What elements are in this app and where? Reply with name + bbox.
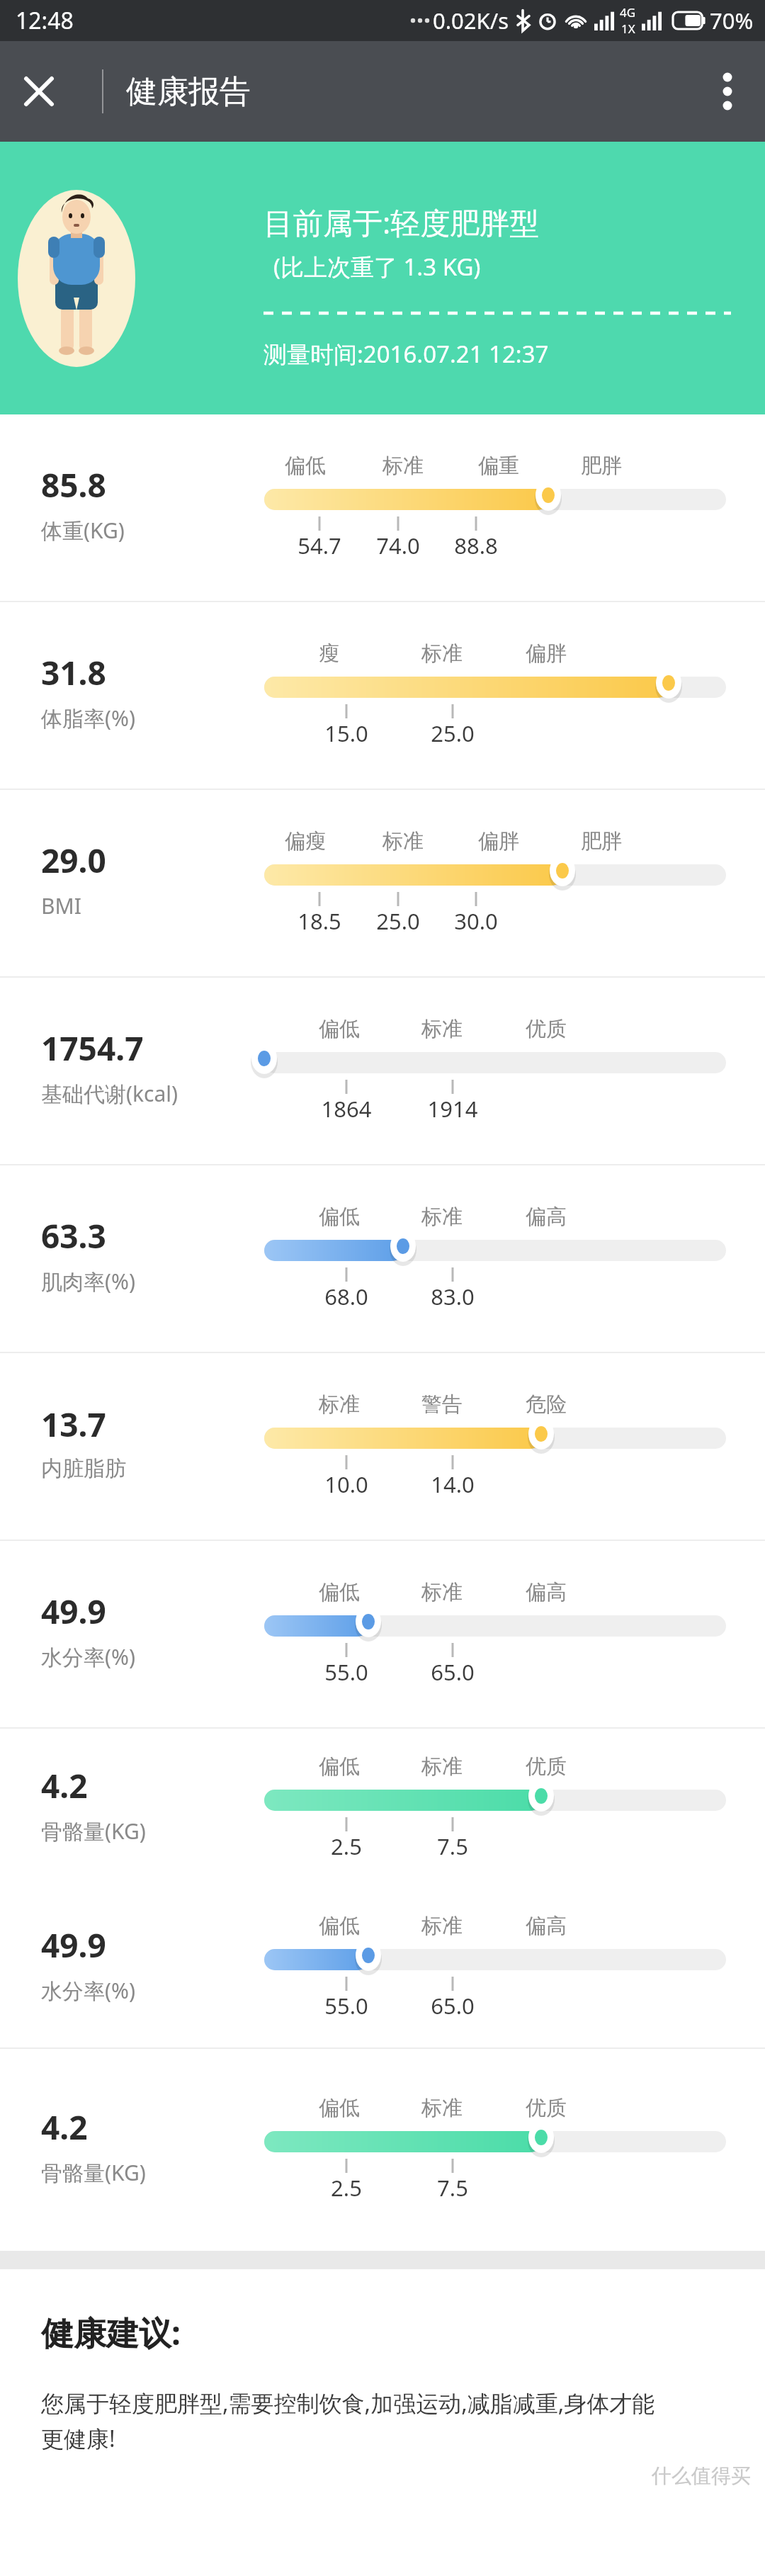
staticText: 标准 [382, 453, 424, 479]
staticText: 标准 [319, 1391, 360, 1418]
button[interactable]: More options [696, 60, 759, 123]
staticText: 54.7 [277, 531, 362, 560]
staticText: 74.0 [356, 531, 441, 560]
staticText: 体重(KG) [41, 516, 125, 545]
staticText: 目前属于:轻度肥胖型 [263, 202, 540, 242]
staticText: 标准 [421, 640, 463, 667]
staticText: 水分率(%) [41, 1976, 135, 2005]
staticText: 10.0 [304, 1469, 389, 1499]
staticText: 0.02K/s [433, 6, 509, 35]
staticText: 偏重 [478, 453, 519, 479]
staticText: 什么值得买 [652, 2463, 751, 2488]
staticText: 优质 [526, 2095, 567, 2121]
staticText: 15.0 [304, 718, 389, 748]
staticText: 健康建议: [41, 2310, 181, 2355]
staticText: 标准 [421, 1204, 463, 1230]
staticText: 偏高 [526, 1579, 567, 1605]
staticText: 29.0 [41, 838, 106, 883]
staticText: 25.0 [356, 906, 441, 936]
staticText: 65.0 [410, 1991, 495, 2021]
staticText: 18.5 [277, 906, 362, 936]
staticText: 1X [621, 21, 635, 37]
staticText: 肥胖 [581, 453, 622, 479]
button[interactable]: 29.0 [0, 790, 765, 976]
staticText: 偏低 [319, 2095, 360, 2121]
staticText: 优质 [526, 1016, 567, 1042]
staticText: 偏高 [526, 1913, 567, 1939]
staticText: 1914 [410, 1094, 495, 1124]
staticText: 70% [710, 6, 754, 35]
button[interactable]: 4.2 [0, 2049, 765, 2251]
staticText: 63.3 [41, 1214, 106, 1258]
staticText: 68.0 [304, 1282, 389, 1311]
staticText: 偏胖 [478, 828, 519, 854]
staticText: 4.2 [41, 1763, 88, 1808]
button[interactable]: 4.2 [0, 1729, 765, 1888]
staticText: (比上次重了 1.3 KG) [273, 251, 481, 283]
staticText: 健康报告 [126, 72, 251, 111]
staticText: 55.0 [304, 1991, 389, 2021]
staticText: 2.5 [304, 2173, 389, 2203]
staticText: 优质 [526, 1753, 567, 1780]
button[interactable]: 49.9 [0, 1541, 765, 1727]
staticText: 偏瘦 [285, 828, 326, 854]
staticText: 基础代谢(kcal) [41, 1079, 178, 1108]
staticText: 肌肉率(%) [41, 1267, 135, 1296]
staticText: 水分率(%) [41, 1642, 135, 1671]
staticText: 测量时间:2016.07.21 12:37 [263, 338, 549, 370]
staticText: 55.0 [304, 1657, 389, 1687]
staticText: 4.2 [41, 2105, 88, 2150]
staticText: 警告 [421, 1391, 463, 1418]
button[interactable]: 49.9 [0, 1888, 765, 2047]
staticText: 12:48 [16, 5, 74, 36]
staticText: 65.0 [410, 1657, 495, 1687]
staticText: 31.8 [41, 650, 106, 695]
staticText: 体脂率(%) [41, 704, 135, 733]
staticText: 标准 [421, 1579, 463, 1605]
staticText: 偏低 [319, 1204, 360, 1230]
staticText: 骨骼量(KG) [41, 2158, 146, 2187]
staticText: 肥胖 [581, 828, 622, 854]
staticText: 7.5 [410, 1831, 495, 1861]
staticText: 偏低 [319, 1913, 360, 1939]
staticText: 瘦 [319, 640, 339, 667]
staticText: 2.5 [304, 1831, 389, 1861]
staticText: 标准 [421, 1016, 463, 1042]
staticText: 49.9 [41, 1589, 106, 1634]
staticText: 83.0 [410, 1282, 495, 1311]
staticText: 7.5 [410, 2173, 495, 2203]
button[interactable]: 85.8 [0, 414, 765, 601]
staticText: 1864 [304, 1094, 389, 1124]
staticText: 14.0 [410, 1469, 495, 1499]
staticText: 偏高 [526, 1204, 567, 1230]
staticText: 1754.7 [41, 1026, 144, 1070]
staticText: 偏低 [319, 1753, 360, 1780]
button[interactable]: 31.8 [0, 602, 765, 789]
staticText: 标准 [421, 1753, 463, 1780]
staticText: 偏胖 [526, 640, 567, 667]
staticText: 偏低 [319, 1016, 360, 1042]
staticText: 标准 [421, 2095, 463, 2121]
button[interactable]: 63.3 [0, 1165, 765, 1352]
staticText: 偏低 [319, 1579, 360, 1605]
staticText: BMI [41, 891, 81, 920]
staticText: 标准 [382, 828, 424, 854]
staticText: 85.8 [41, 463, 106, 507]
staticText: 内脏脂肪 [41, 1455, 126, 1482]
staticText: 危险 [526, 1391, 567, 1418]
button[interactable]: 13.7 [0, 1353, 765, 1540]
staticText: 标准 [421, 1913, 463, 1939]
staticText: 30.0 [433, 906, 518, 936]
staticText: 骨骼量(KG) [41, 1817, 146, 1846]
staticText: 25.0 [410, 718, 495, 748]
staticText: 88.8 [433, 531, 518, 560]
staticText: 49.9 [41, 1923, 106, 1967]
staticText: 4G [620, 4, 636, 21]
staticText: 您属于轻度肥胖型,需要控制饮食,加强运动,减脂减重,身体才能 更健康! [41, 2388, 655, 2453]
staticText: 偏低 [285, 453, 326, 479]
button[interactable]: 1754.7 [0, 978, 765, 1164]
staticText: 13.7 [41, 1402, 106, 1447]
button[interactable]: Close [7, 60, 71, 123]
